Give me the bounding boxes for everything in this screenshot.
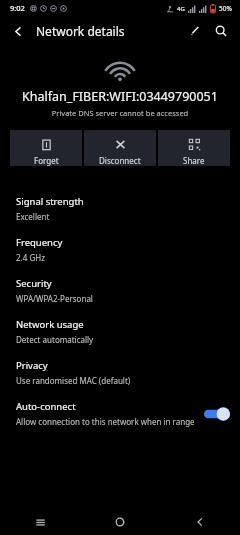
button[interactable]: Back (160, 509, 240, 535)
staticText: 4G (177, 5, 185, 13)
button[interactable]: Network usage (0, 311, 240, 352)
button[interactable]: Privacy (0, 352, 240, 393)
staticText: Private DNS server cannot be accessed (0, 108, 240, 118)
staticText: 2.4 GHz (16, 252, 45, 263)
button[interactable]: Back (6, 19, 30, 43)
staticText: Network usage (16, 318, 84, 331)
staticText: Forget (34, 155, 59, 166)
staticText: Privacy (16, 359, 48, 372)
button[interactable]: Share (158, 130, 230, 166)
staticText: Excellent (16, 211, 50, 222)
button[interactable]: Auto-connect (0, 393, 240, 434)
button[interactable]: Frequency (0, 229, 240, 270)
button[interactable]: Search (208, 18, 234, 44)
button[interactable]: Auto-connect toggle (204, 407, 230, 421)
staticText: Signal strength (16, 195, 84, 208)
staticText: Use randomised MAC (default) (16, 375, 131, 386)
button[interactable]: Forget (10, 130, 82, 166)
staticText: 50% (219, 4, 232, 13)
staticText: Network details (36, 23, 125, 39)
button[interactable]: Signal strength (0, 188, 240, 229)
button[interactable]: Home (80, 509, 160, 535)
button[interactable]: Edit (182, 18, 208, 44)
button[interactable]: Recents (0, 509, 80, 535)
staticText: Security (16, 277, 52, 290)
staticText: Disconnect (99, 155, 141, 166)
staticText: Frequency (16, 236, 63, 249)
staticText: Khalfan_FIBER:WIFI:03449790051 (4, 88, 236, 105)
staticText: Detect automatically (16, 334, 94, 345)
staticText: Allow connection to this network when in… (16, 416, 195, 427)
staticText: Auto-connect (16, 400, 76, 413)
staticText: 9:02 (10, 3, 25, 13)
button[interactable]: Security (0, 270, 240, 311)
staticText: WPA/WPA2-Personal (16, 293, 93, 304)
staticText: Share (183, 155, 205, 166)
button[interactable]: Disconnect (84, 130, 156, 166)
